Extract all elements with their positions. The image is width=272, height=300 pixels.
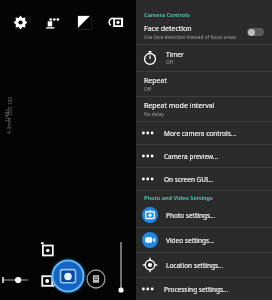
button[interactable]: Video settings... <box>136 228 272 252</box>
staticText: Camera preview... <box>164 152 219 161</box>
staticText: Repeat mode interval <box>144 101 215 111</box>
button[interactable]: Face detection <box>136 20 272 44</box>
staticText: On screen GUI... <box>164 175 214 184</box>
staticText: Face detection <box>144 24 192 34</box>
button[interactable]: Shutter <box>50 258 86 294</box>
button[interactable]: Settings <box>8 10 32 34</box>
button[interactable]: Add photo <box>40 242 56 258</box>
staticText: Off <box>144 86 152 93</box>
staticText: ISO 100 <box>7 96 14 115</box>
staticText: Use face detection instead of focus area… <box>144 34 237 41</box>
button[interactable]: Location settings... <box>136 253 272 277</box>
button[interactable]: On screen GUI... <box>136 168 272 190</box>
staticText: Processing settings... <box>164 285 229 294</box>
button[interactable]: Zoom <box>116 242 126 292</box>
button[interactable]: Processing settings... <box>136 278 272 300</box>
button[interactable]: Exposure compensation <box>72 10 96 34</box>
button[interactable]: Repeat mode interval <box>136 97 272 121</box>
button[interactable]: More camera controls... <box>136 122 272 144</box>
button[interactable]: Photo mode <box>40 273 56 289</box>
staticText: Location settings... <box>166 261 224 270</box>
staticText: Video settings... <box>166 236 215 245</box>
staticText: Repeat <box>144 76 168 86</box>
button[interactable]: Photo settings... <box>136 203 272 227</box>
staticText: Photo and Video Settings <box>144 194 213 201</box>
staticText: No delay <box>144 111 164 118</box>
button[interactable]: Switch camera <box>104 10 128 34</box>
button[interactable]: Camera preview... <box>136 145 272 167</box>
staticText: Camera Controls <box>144 11 190 18</box>
button[interactable]: Focus mode <box>2 274 28 286</box>
staticText: 1/48s <box>4 109 11 122</box>
button[interactable]: Timer <box>136 45 272 71</box>
button[interactable]: Repeat <box>136 72 272 96</box>
staticText: 4.3mm <box>6 117 13 134</box>
button[interactable]: Gallery <box>87 270 105 288</box>
button[interactable]: Scene mode <box>40 10 64 34</box>
staticText: Off <box>166 59 174 66</box>
staticText: Photo settings... <box>166 211 216 220</box>
staticText: More camera controls... <box>164 129 237 138</box>
staticText: Timer <box>166 50 184 59</box>
